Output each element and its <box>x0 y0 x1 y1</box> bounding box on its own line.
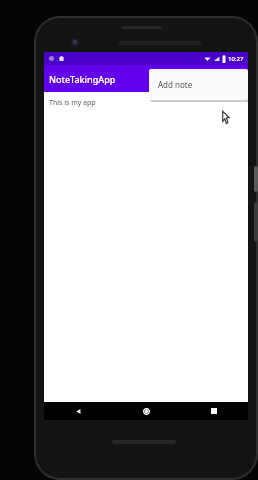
staticText: 10:27 <box>228 55 244 63</box>
button[interactable]: Home <box>112 402 180 420</box>
staticText: Add note <box>158 79 193 90</box>
button[interactable]: Back <box>44 402 112 420</box>
staticText: This is my app <box>49 98 96 108</box>
button[interactable]: NoteTakingApp <box>44 65 248 92</box>
button[interactable]: Add note <box>149 69 248 100</box>
staticText: NoteTakingApp <box>49 73 116 85</box>
button[interactable]: Recent apps <box>180 402 248 420</box>
